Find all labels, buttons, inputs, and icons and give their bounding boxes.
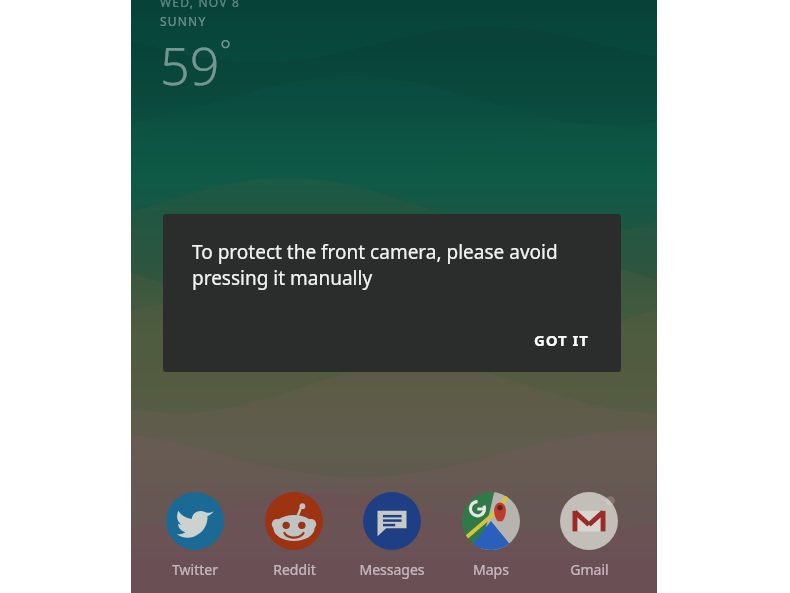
staticText: WED, NOV 8 bbox=[160, 0, 241, 10]
staticText: 59 bbox=[160, 29, 220, 100]
staticText: Maps bbox=[473, 560, 509, 579]
staticText: ° bbox=[220, 31, 232, 66]
button[interactable]: Twitter bbox=[151, 492, 239, 590]
staticText: GOT IT bbox=[534, 330, 589, 350]
staticText: Gmail bbox=[570, 560, 609, 579]
button[interactable]: Reddit bbox=[250, 492, 338, 590]
staticText: To protect the front camera, please avoi… bbox=[192, 239, 582, 291]
button[interactable]: Maps bbox=[447, 492, 535, 590]
staticText: Reddit bbox=[273, 560, 316, 579]
staticText: Messages bbox=[359, 560, 425, 579]
staticText: Twitter bbox=[172, 560, 218, 579]
staticText: SUNNY bbox=[160, 13, 207, 29]
button[interactable]: Gmail bbox=[545, 492, 633, 590]
button[interactable]: Messages bbox=[348, 492, 436, 590]
button[interactable]: GOT IT bbox=[518, 322, 605, 358]
